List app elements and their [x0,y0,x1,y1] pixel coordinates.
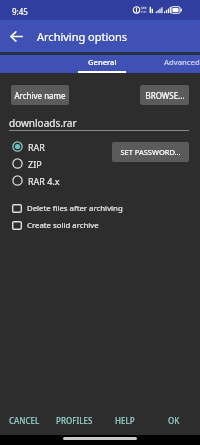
button[interactable]: HELP [111,410,139,431]
button[interactable]: CANCEL [5,410,44,431]
staticText: Delete files after archiving [27,203,123,214]
staticText: RAR 4.x [28,175,60,187]
button[interactable]: General [78,55,126,73]
staticText: 9:45 [12,6,28,17]
button[interactable]: Create solid archive [12,217,182,234]
button[interactable]: BROWSE... [140,85,189,105]
button[interactable]: RAR 4.x [10,172,110,189]
staticText: ZIP [28,158,42,170]
staticText: HELP [115,415,135,426]
staticText: Archive name [14,90,66,101]
button[interactable]: PROFILES [52,410,97,431]
staticText: CANCEL [9,415,40,426]
button[interactable]: Back [6,26,26,46]
staticText: PROFILES [56,415,93,426]
staticText: Advanced [164,57,200,67]
staticText: downloads.rar [9,116,77,130]
staticText: BROWSE... [145,90,185,101]
staticText: Create solid archive [27,220,99,231]
button[interactable]: Delete files after archiving [12,200,182,217]
staticText: General [88,57,117,67]
staticText: SET PASSWORD... [120,147,181,157]
button[interactable]: Advanced [161,55,200,73]
staticText: OK [168,415,180,426]
button[interactable]: OK [164,410,184,431]
button[interactable]: Archive name [11,85,69,105]
staticText: Archiving options [37,29,128,44]
button[interactable]: ZIP [10,155,110,172]
staticText: RAR [28,141,45,153]
button[interactable]: SET PASSWORD... [112,142,189,162]
button[interactable]: RAR [10,138,110,155]
